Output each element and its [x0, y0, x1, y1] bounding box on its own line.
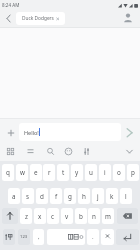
staticText: r	[48, 168, 51, 177]
button[interactable]	[3, 229, 15, 245]
button[interactable]	[81, 146, 92, 157]
staticText: j	[97, 192, 99, 201]
staticText: m	[105, 212, 111, 221]
button[interactable]: 123	[18, 229, 30, 245]
button[interactable]: l	[120, 188, 132, 204]
staticText: b	[79, 212, 83, 221]
staticText: v	[65, 212, 69, 221]
staticText: c	[51, 212, 55, 221]
staticText: i	[104, 168, 106, 177]
button[interactable]: s	[22, 188, 34, 204]
button[interactable]	[5, 146, 16, 157]
staticText: a	[12, 192, 16, 201]
button[interactable]: t	[57, 164, 69, 181]
button[interactable]: w	[16, 164, 28, 181]
button[interactable]: u	[85, 164, 97, 181]
staticText: f	[55, 192, 58, 201]
button[interactable]: .	[87, 229, 99, 245]
staticText: e	[34, 168, 38, 177]
button[interactable]: r	[43, 164, 55, 181]
staticText: h	[82, 192, 86, 201]
button[interactable]: f	[50, 188, 62, 204]
button[interactable]: d	[36, 188, 48, 204]
button[interactable]: m	[102, 208, 114, 224]
button[interactable]	[124, 146, 135, 157]
button[interactable]: n	[88, 208, 100, 224]
button[interactable]: p	[127, 164, 139, 181]
staticText: g	[68, 192, 72, 201]
staticText: 123	[20, 234, 28, 240]
button[interactable]: o	[113, 164, 125, 181]
button[interactable]	[47, 229, 85, 245]
staticText: Hello!	[24, 129, 39, 136]
button[interactable]	[116, 229, 139, 245]
button[interactable]: h	[78, 188, 90, 204]
button[interactable]: x	[34, 208, 46, 224]
staticText: 8:24 AM	[2, 2, 20, 8]
staticText: t	[62, 168, 65, 177]
button[interactable]: y	[71, 164, 83, 181]
button[interactable]	[2, 208, 18, 224]
button[interactable]	[5, 127, 17, 139]
staticText: y	[75, 168, 79, 177]
staticText: p	[131, 168, 135, 177]
staticText: k	[110, 192, 114, 201]
staticText: ,	[38, 233, 40, 241]
staticText: .	[92, 233, 94, 241]
staticText: n	[92, 212, 96, 221]
button[interactable]: Duck Dodgers	[16, 12, 65, 25]
button[interactable]: v	[61, 208, 73, 224]
button[interactable]	[117, 208, 138, 224]
staticText: s	[26, 192, 30, 201]
button[interactable]: c	[47, 208, 59, 224]
button[interactable]	[25, 146, 36, 157]
staticText: Duck Dodgers	[22, 15, 54, 22]
button[interactable]	[45, 146, 56, 157]
button[interactable]	[3, 12, 15, 25]
button[interactable]: g	[64, 188, 76, 204]
button[interactable]: b	[75, 208, 87, 224]
staticText: z	[25, 212, 28, 221]
staticText: q	[6, 168, 10, 177]
staticText: l	[125, 192, 127, 201]
button[interactable]	[101, 229, 114, 245]
staticText: d	[40, 192, 44, 201]
button[interactable]	[63, 146, 74, 157]
staticText: w	[20, 168, 25, 177]
button[interactable]	[123, 126, 136, 139]
button[interactable]: j	[92, 188, 104, 204]
button[interactable]: Hello!	[19, 123, 121, 141]
staticText: u	[89, 168, 93, 177]
staticText: x	[38, 212, 42, 221]
button[interactable]	[121, 11, 135, 25]
staticText: o	[117, 168, 121, 177]
button[interactable]: z	[20, 208, 32, 224]
button[interactable]: a	[8, 188, 20, 204]
button[interactable]: i	[99, 164, 111, 181]
button[interactable]: e	[30, 164, 42, 181]
button[interactable]: k	[106, 188, 118, 204]
button[interactable]: q	[2, 164, 14, 181]
button[interactable]: ,	[33, 229, 44, 245]
